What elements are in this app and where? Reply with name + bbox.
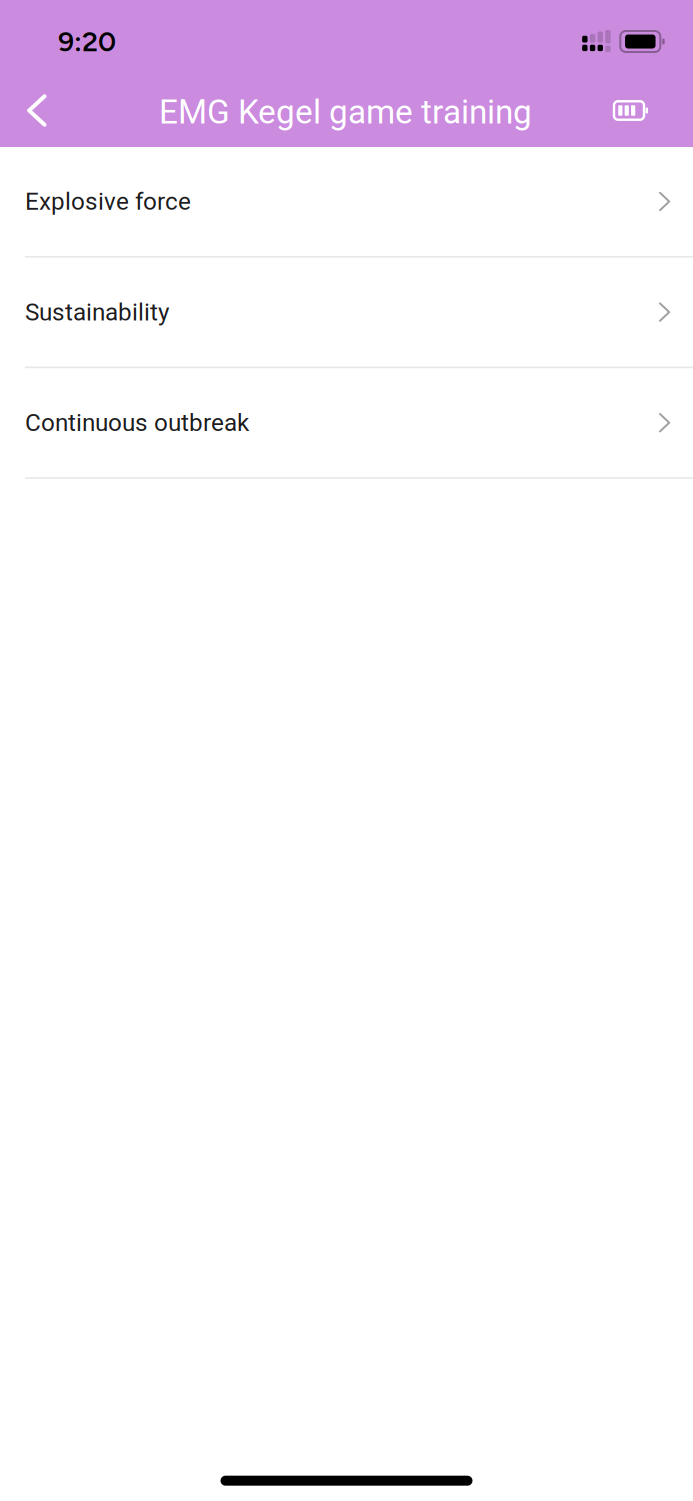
button[interactable]: Explosive force bbox=[0, 147, 693, 258]
button[interactable]: Battery status bbox=[601, 76, 661, 145]
button[interactable]: Back bbox=[4, 76, 70, 145]
staticText: EMG Kegel game training bbox=[159, 92, 532, 132]
staticText: Continuous outbreak bbox=[25, 408, 249, 437]
button[interactable]: Continuous outbreak bbox=[0, 368, 693, 479]
staticText: Sustainability bbox=[25, 298, 169, 326]
staticText: 9:20 bbox=[58, 25, 116, 58]
staticText: Explosive force bbox=[25, 187, 191, 216]
button[interactable]: Sustainability bbox=[0, 258, 693, 368]
